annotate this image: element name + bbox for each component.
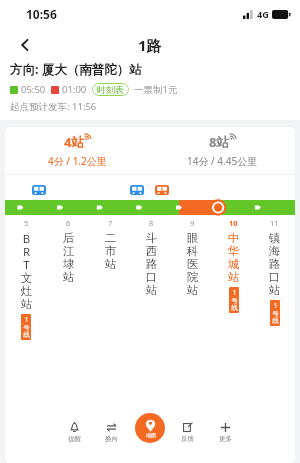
button[interactable]: 8 (131, 218, 172, 297)
button[interactable]: 11 (254, 218, 295, 326)
button[interactable]: 4站 (5, 127, 150, 174)
staticText: 01:00 (62, 83, 87, 96)
staticText: 镇海路口站 (268, 231, 281, 297)
staticText: 05:50 (21, 83, 46, 96)
staticText: 中华城站 (227, 231, 240, 284)
staticText: 1号线 (272, 301, 279, 325)
button[interactable]: 更多 (206, 415, 244, 449)
button[interactable]: 9 (172, 218, 213, 297)
staticText: 提醒 (68, 435, 81, 443)
staticText: 11 (270, 218, 279, 228)
button[interactable]: Back (8, 28, 42, 61)
staticText: 7 (108, 218, 113, 228)
button[interactable]: 换向 (93, 415, 130, 449)
button[interactable]: 提醒 (56, 415, 93, 449)
staticText: 二市站 (104, 231, 117, 271)
button[interactable]: 10 (213, 218, 254, 313)
staticText: 9 (190, 218, 195, 228)
staticText: 1号线 (231, 288, 238, 312)
button[interactable]: 反馈 (168, 415, 206, 449)
staticText: 反馈 (181, 435, 194, 443)
staticText: 5 (24, 218, 29, 228)
staticText: BRT文灶站 (20, 231, 33, 311)
staticText: 1号线 (23, 315, 30, 339)
button[interactable]: 时刻表 (92, 83, 129, 96)
staticText: 4站 (64, 133, 85, 151)
staticText: 后江埭站 (62, 231, 75, 284)
staticText: 10:56 (26, 6, 57, 22)
staticText: 方向: 厦大（南普陀）站 (10, 61, 142, 78)
staticText: 斗西路口站 (145, 231, 158, 297)
staticText: 起点预计发车: 11:56 (10, 100, 97, 113)
staticText: 眼科医院站 (186, 231, 199, 297)
staticText: 时刻表 (97, 84, 124, 95)
staticText: 更多 (219, 435, 232, 443)
staticText: 地图 (146, 432, 156, 438)
button[interactable]: 5 (5, 218, 47, 340)
button[interactable]: 地图 (135, 413, 165, 443)
staticText: 4分 / 1.2公里 (48, 154, 107, 168)
staticText: 4G (257, 8, 269, 20)
staticText: 1路 (138, 35, 162, 55)
staticText: 14分 / 4.45公里 (187, 154, 258, 168)
staticText: 6 (66, 218, 71, 228)
button[interactable]: 6 (47, 218, 89, 284)
staticText: 8 (149, 218, 154, 228)
staticText: 8站 (209, 133, 230, 151)
staticText: 10 (229, 218, 238, 228)
button[interactable]: 7 (89, 218, 131, 271)
staticText: 换向 (105, 435, 118, 443)
staticText: 一票制1元 (134, 83, 178, 96)
button[interactable]: 8站 (150, 127, 295, 174)
